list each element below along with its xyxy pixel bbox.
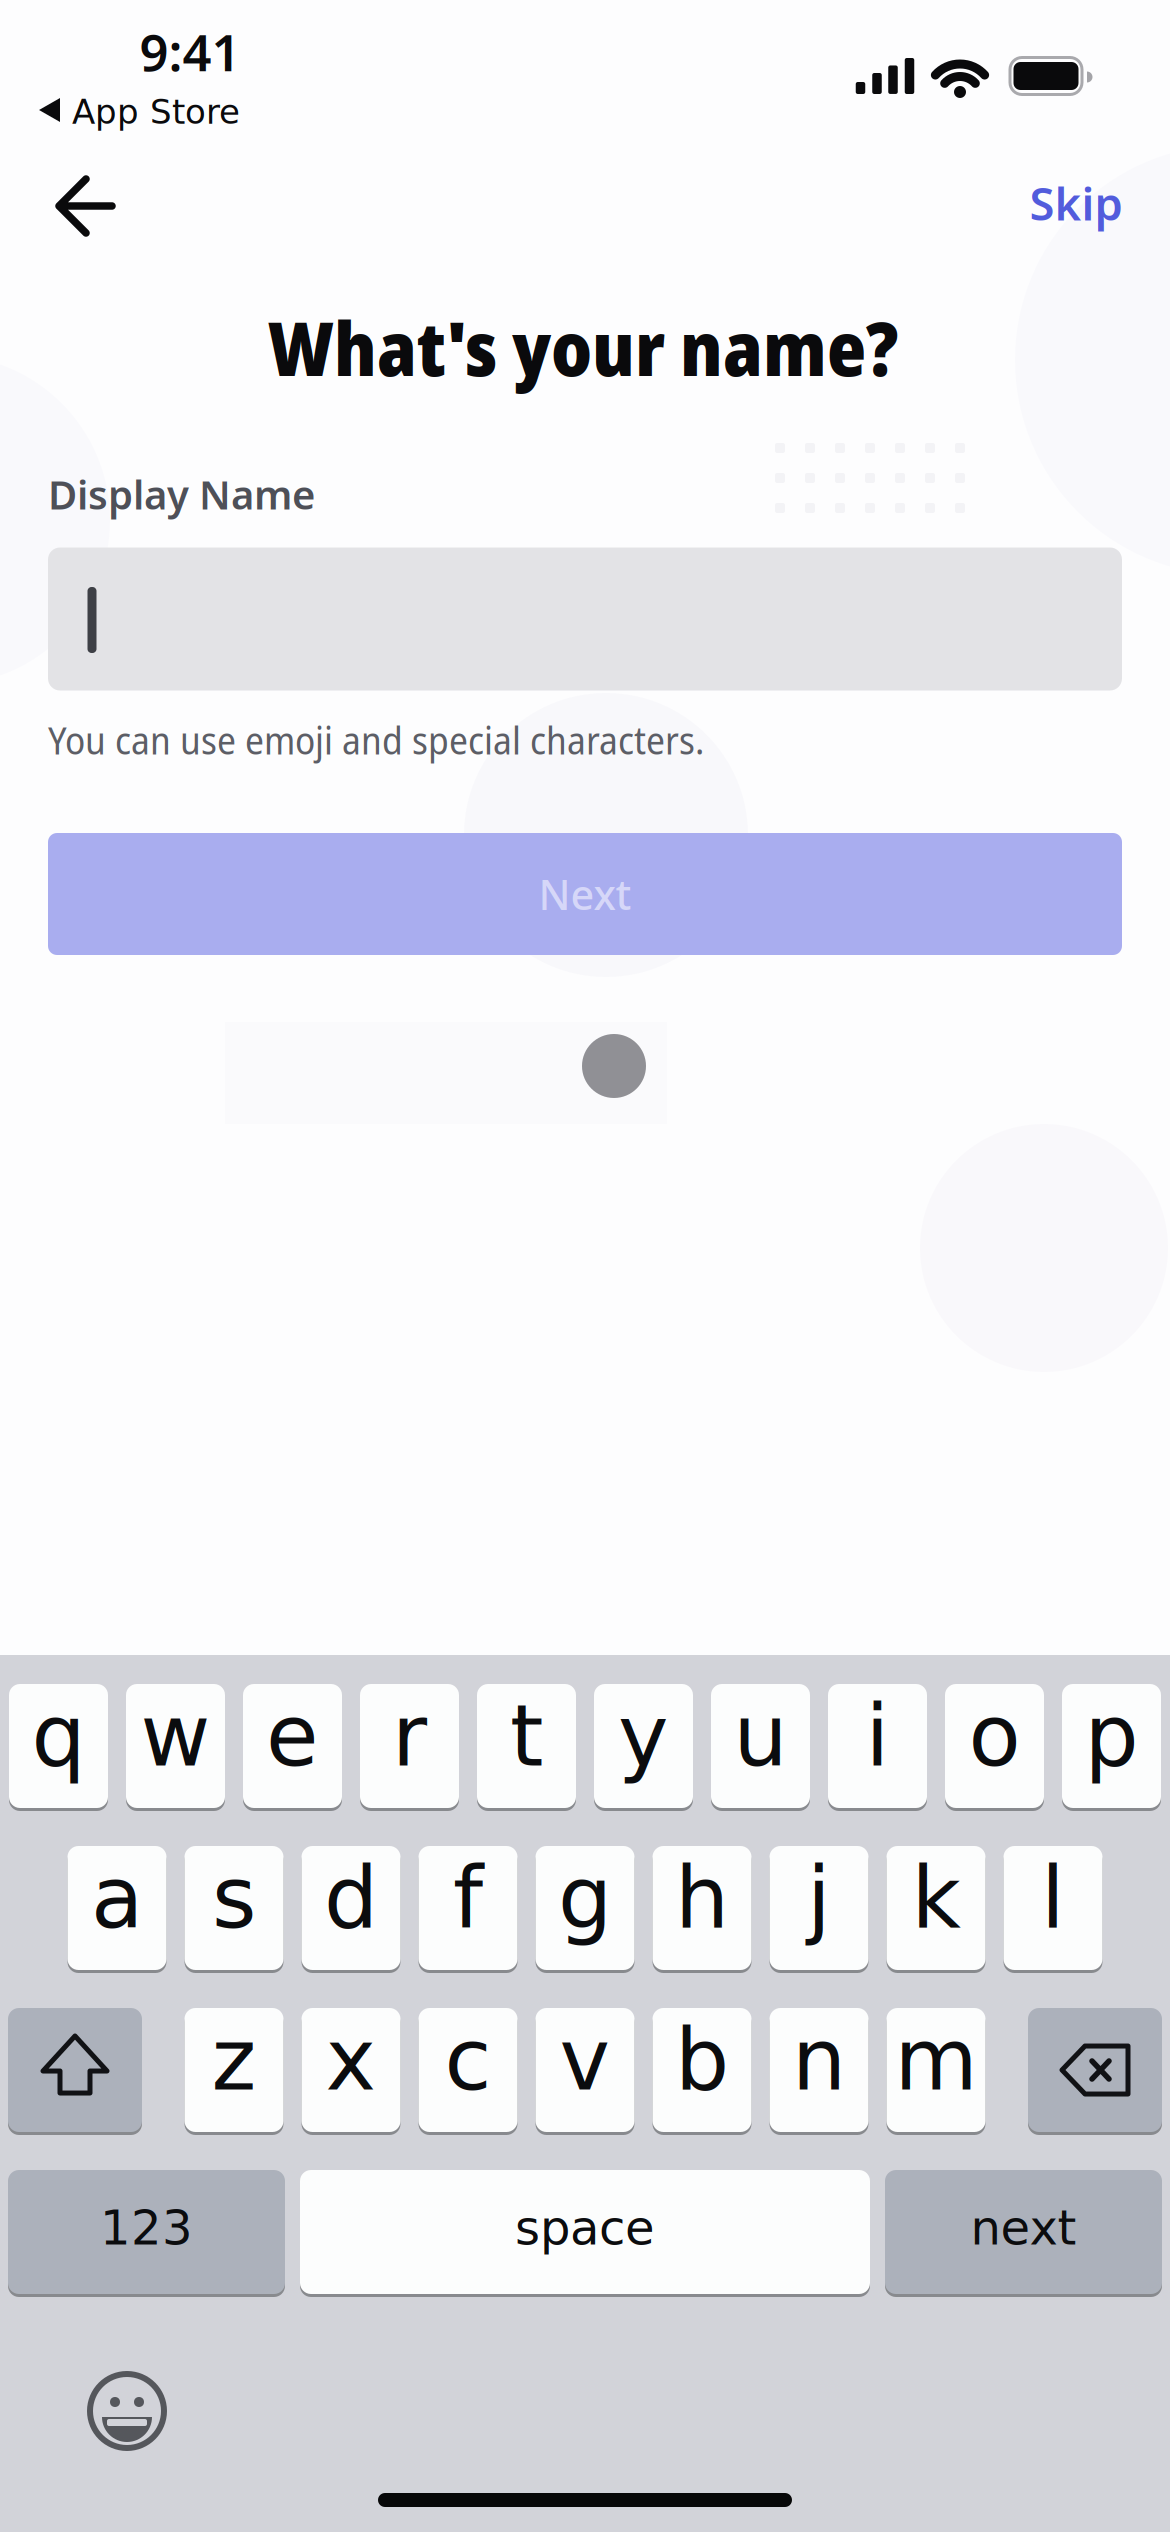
staticText: y — [618, 1686, 669, 1786]
button[interactable]: Skip — [1029, 173, 1122, 233]
staticText: b — [675, 2010, 729, 2110]
staticText: r — [392, 1686, 427, 1786]
staticText: d — [324, 1848, 378, 1948]
button[interactable]: l — [1003, 1844, 1102, 1971]
button[interactable]: v — [535, 2006, 634, 2133]
button[interactable]: f — [418, 1844, 517, 1971]
button[interactable]: a — [67, 1844, 166, 1971]
button[interactable]: r — [360, 1682, 459, 1809]
staticText: f — [453, 1848, 483, 1948]
button[interactable]: Emoji — [72, 2356, 182, 2466]
button[interactable]: s — [184, 1844, 283, 1971]
button[interactable]: e — [243, 1682, 342, 1809]
button[interactable]: d — [301, 1844, 400, 1971]
staticText: Next — [538, 867, 631, 921]
staticText: x — [325, 2010, 376, 2110]
button[interactable]: w — [126, 1682, 225, 1809]
button[interactable]: b — [652, 2006, 751, 2133]
staticText: q — [31, 1686, 85, 1786]
staticText: j — [807, 1848, 831, 1948]
staticText: You can use emoji and special characters… — [48, 715, 704, 765]
staticText: w — [140, 1686, 210, 1786]
button[interactable]: p — [1062, 1682, 1161, 1809]
button[interactable]: g — [535, 1844, 634, 1971]
staticText: Skip — [1029, 173, 1122, 233]
button[interactable]: y — [594, 1682, 693, 1809]
staticText: App Store — [72, 92, 240, 132]
staticText: u — [733, 1686, 787, 1786]
staticText: n — [792, 2010, 846, 2110]
button[interactable]: space — [300, 2168, 870, 2295]
staticText: v — [559, 2010, 610, 2110]
button[interactable]: Delete — [1028, 2006, 1162, 2133]
staticText: k — [911, 1848, 960, 1948]
staticText: p — [1084, 1686, 1138, 1786]
staticText: e — [266, 1686, 319, 1786]
button[interactable]: next — [885, 2168, 1162, 2295]
button[interactable]: Shift — [8, 2006, 142, 2133]
button[interactable]: z — [184, 2006, 283, 2133]
button[interactable]: 123 — [8, 2168, 285, 2295]
button[interactable]: m — [886, 2006, 985, 2133]
staticText: o — [968, 1686, 1020, 1786]
button[interactable]: k — [886, 1844, 985, 1971]
staticText: i — [865, 1686, 889, 1786]
button[interactable]: x — [301, 2006, 400, 2133]
staticText: c — [444, 2010, 491, 2110]
button[interactable]: u — [711, 1682, 810, 1809]
staticText: 123 — [100, 2200, 193, 2256]
staticText: a — [91, 1848, 143, 1948]
button[interactable]: t — [477, 1682, 576, 1809]
staticText: s — [212, 1848, 256, 1948]
button[interactable]: j — [769, 1844, 868, 1971]
staticText: What's your name? — [268, 296, 898, 398]
staticText: 9:41 — [139, 18, 240, 85]
staticText: g — [558, 1848, 612, 1948]
button[interactable]: h — [652, 1844, 751, 1971]
staticText: Display Name — [48, 467, 315, 520]
button[interactable]: q — [9, 1682, 108, 1809]
staticText: space — [515, 2200, 655, 2256]
button[interactable]: c — [418, 2006, 517, 2133]
button[interactable]: Display Name text field — [48, 547, 1122, 690]
button[interactable]: o — [945, 1682, 1044, 1809]
button[interactable]: Back — [29, 151, 139, 261]
button[interactable]: n — [769, 2006, 868, 2133]
staticText: z — [211, 2010, 256, 2110]
button[interactable]: Next — [48, 833, 1122, 955]
staticText: l — [1041, 1848, 1065, 1948]
staticText: m — [894, 2010, 977, 2110]
staticText: next — [970, 2200, 1076, 2256]
staticText: h — [675, 1848, 729, 1948]
staticText: t — [510, 1686, 543, 1786]
button[interactable]: i — [828, 1682, 927, 1809]
